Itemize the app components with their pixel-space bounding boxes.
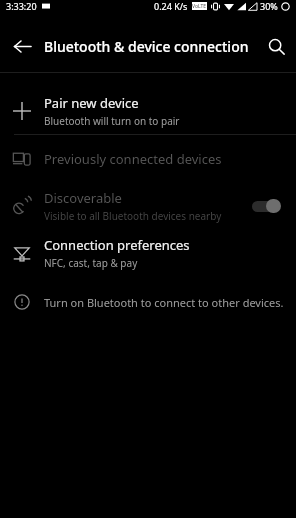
staticText: Bluetooth will turn on to pair (44, 114, 180, 128)
staticText: Visible to all Bluetooth devices nearby (44, 209, 222, 223)
staticText: Turn on Bluetooth to connect to other de… (44, 295, 284, 310)
staticText: 0.24 K/s (154, 0, 188, 12)
button[interactable]: Previously connected devices (0, 135, 296, 182)
staticText: 30% (260, 0, 278, 12)
button[interactable] (250, 199, 282, 213)
button[interactable]: Search (256, 20, 296, 72)
staticText: Previously connected devices (44, 150, 222, 168)
staticText: Pair new device (44, 94, 139, 112)
staticText: VoLTE (192, 3, 207, 10)
staticText: NFC, cast, tap & pay (44, 256, 138, 270)
button[interactable]: Back (0, 20, 44, 72)
staticText: Discoverable (44, 189, 122, 207)
staticText: Bluetooth & device connection (44, 37, 249, 56)
button[interactable]: Pair new device (0, 87, 296, 134)
button[interactable]: Connection preferences (0, 229, 296, 276)
button[interactable]: Discoverable (0, 182, 296, 229)
staticText: Connection preferences (44, 236, 190, 254)
staticText: 3:33:20 (6, 0, 37, 12)
